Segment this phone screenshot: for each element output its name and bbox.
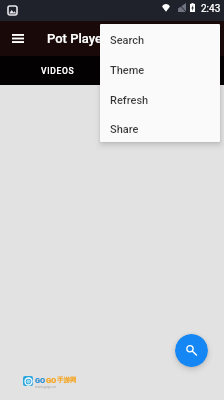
- staticText: GO: [35, 376, 46, 385]
- button[interactable]: Open navigation drawer: [6, 27, 29, 50]
- staticText: 手游网: [57, 376, 77, 384]
- button[interactable]: Search: [175, 334, 208, 367]
- staticText: Theme: [110, 64, 145, 77]
- button[interactable]: Search: [100, 25, 220, 55]
- button[interactable]: Refresh: [100, 85, 220, 115]
- staticText: GO: [46, 376, 57, 385]
- staticText: 2:43: [201, 3, 221, 15]
- button[interactable]: Theme: [100, 55, 220, 85]
- staticText: www.gogo.cn: [35, 385, 57, 389]
- staticText: VIDEOS: [41, 66, 75, 76]
- staticText: Refresh: [110, 94, 149, 107]
- button[interactable]: VIDEOS: [20, 56, 95, 85]
- staticText: Pot Player: [47, 31, 107, 46]
- staticText: Share: [110, 123, 139, 136]
- button[interactable]: Share: [100, 115, 220, 142]
- staticText: Search: [110, 34, 145, 47]
